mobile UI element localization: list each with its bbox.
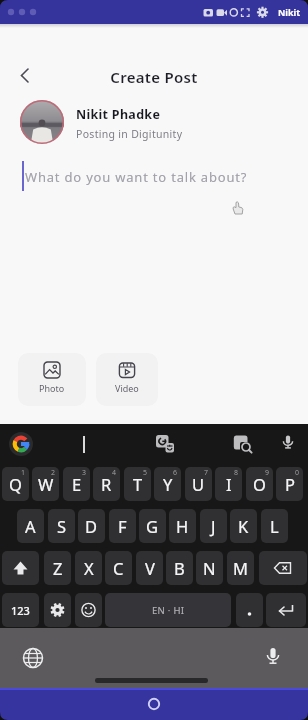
- staticText: 2: [51, 468, 56, 478]
- button[interactable]: U: [185, 467, 212, 501]
- staticText: U: [192, 473, 205, 495]
- button[interactable]: L: [261, 509, 288, 543]
- button[interactable]: A: [17, 509, 44, 543]
- staticText: N: [203, 557, 216, 579]
- button[interactable]: B: [166, 551, 193, 585]
- staticText: 5: [143, 468, 148, 478]
- button[interactable]: M: [227, 551, 254, 585]
- button[interactable]: EN · HI: [105, 593, 231, 627]
- button[interactable]: T: [124, 467, 151, 501]
- button[interactable]: O: [246, 467, 273, 501]
- button[interactable]: G: [139, 509, 166, 543]
- staticText: Q: [9, 473, 22, 495]
- button[interactable]: [12, 62, 36, 86]
- button[interactable]: Y: [154, 467, 181, 501]
- button[interactable]: [22, 647, 44, 669]
- button[interactable]: [44, 593, 71, 627]
- button[interactable]: D: [78, 509, 105, 543]
- button[interactable]: H: [169, 509, 196, 543]
- staticText: Nikit Phadke: [76, 106, 161, 123]
- button[interactable]: P: [276, 467, 303, 501]
- staticText: 7: [204, 468, 209, 478]
- staticText: S: [57, 515, 67, 537]
- button[interactable]: [259, 551, 307, 585]
- staticText: Posting in Digitunity: [76, 127, 183, 141]
- button[interactable]: [236, 593, 263, 627]
- staticText: J: [211, 515, 216, 537]
- staticText: K: [238, 515, 249, 537]
- button[interactable]: E: [63, 467, 90, 501]
- button[interactable]: J: [200, 509, 227, 543]
- staticText: I: [226, 473, 232, 495]
- staticText: R: [101, 473, 112, 495]
- staticText: E: [72, 473, 82, 495]
- staticText: L: [270, 515, 279, 537]
- button[interactable]: K: [230, 509, 257, 543]
- staticText: W: [38, 473, 54, 495]
- button[interactable]: I: [215, 467, 242, 501]
- staticText: 9: [265, 468, 270, 478]
- staticText: Y: [163, 473, 173, 495]
- button[interactable]: V: [136, 551, 163, 585]
- staticText: X: [84, 557, 94, 579]
- staticText: 3: [82, 468, 87, 478]
- button[interactable]: Photo: [18, 353, 86, 406]
- staticText: F: [118, 515, 127, 537]
- staticText: G: [146, 515, 159, 537]
- button[interactable]: F: [109, 509, 136, 543]
- staticText: H: [176, 515, 189, 537]
- button[interactable]: [266, 593, 306, 627]
- staticText: 123: [11, 603, 30, 618]
- button[interactable]: Z: [44, 551, 71, 585]
- staticText: 8: [234, 468, 239, 478]
- staticText: A: [25, 515, 36, 537]
- button[interactable]: What do you want to talk about?: [25, 168, 248, 186]
- staticText: M: [233, 557, 248, 579]
- staticText: O: [253, 473, 266, 495]
- staticText: P: [285, 473, 295, 495]
- button[interactable]: Q: [2, 467, 29, 501]
- button[interactable]: [147, 697, 161, 711]
- button[interactable]: 123: [2, 593, 39, 627]
- button[interactable]: C: [105, 551, 132, 585]
- staticText: T: [133, 473, 143, 495]
- button[interactable]: Video: [96, 353, 158, 406]
- button[interactable]: S: [48, 509, 75, 543]
- button[interactable]: X: [75, 551, 102, 585]
- button[interactable]: [2, 551, 39, 585]
- staticText: Nikit: [278, 6, 301, 18]
- staticText: 6: [173, 468, 178, 478]
- staticText: V: [145, 557, 155, 579]
- staticText: EN · HI: [152, 604, 185, 617]
- button[interactable]: [75, 593, 102, 627]
- staticText: 1: [21, 468, 26, 478]
- button[interactable]: [278, 433, 298, 453]
- button[interactable]: [155, 434, 175, 454]
- button[interactable]: W: [32, 467, 59, 501]
- staticText: 4: [112, 468, 117, 478]
- staticText: B: [174, 557, 185, 579]
- button[interactable]: Nikit Phadke: [20, 100, 183, 144]
- staticText: Create Post: [0, 67, 308, 87]
- staticText: D: [85, 515, 98, 537]
- staticText: C: [113, 557, 124, 579]
- staticText: Photo: [39, 382, 65, 394]
- staticText: Video: [115, 382, 139, 394]
- button[interactable]: R: [93, 467, 120, 501]
- staticText: Z: [53, 557, 63, 579]
- button[interactable]: [233, 434, 253, 454]
- staticText: 0: [295, 468, 300, 478]
- button[interactable]: N: [196, 551, 223, 585]
- button[interactable]: [262, 646, 284, 668]
